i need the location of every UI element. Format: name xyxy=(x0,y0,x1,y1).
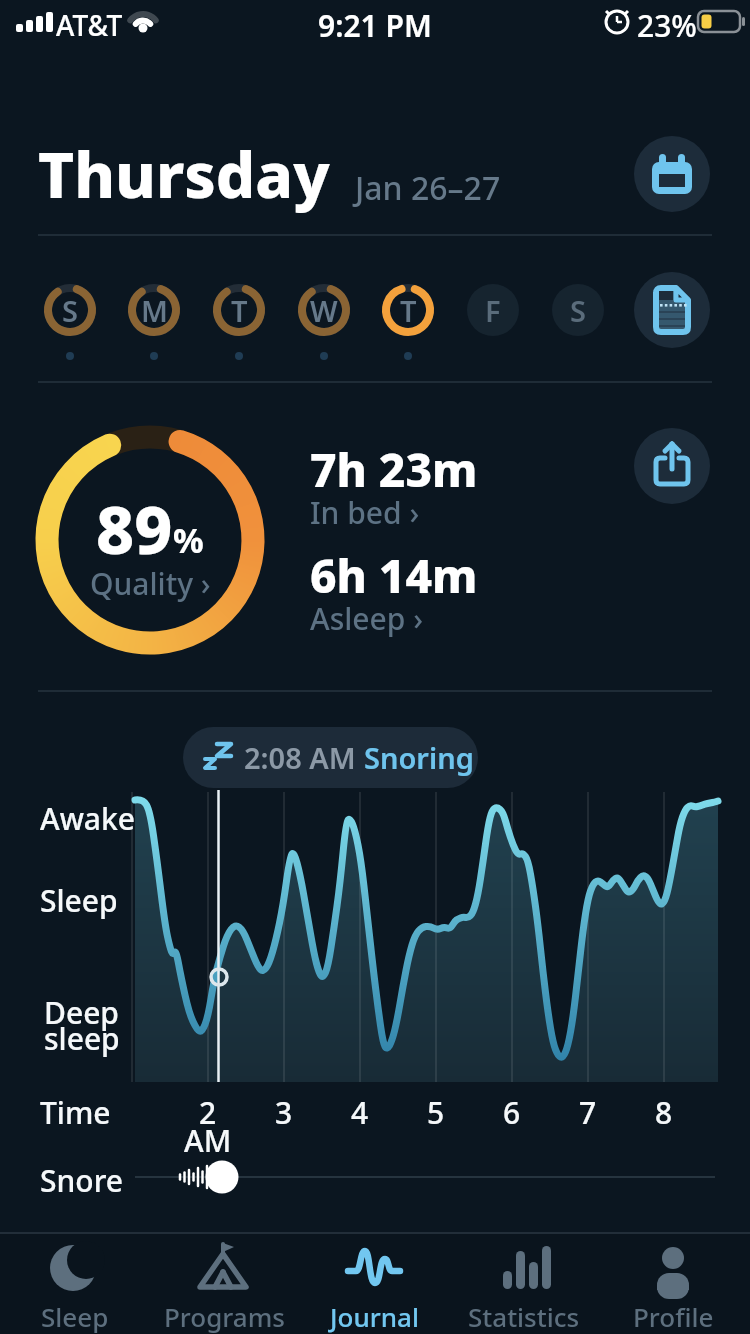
button[interactable]: 2:08 AM xyxy=(183,727,478,788)
staticText: 7 xyxy=(579,1092,597,1133)
button[interactable]: Statistics xyxy=(459,1240,589,1334)
staticText: Deep xyxy=(44,992,119,1033)
button[interactable] xyxy=(634,428,710,504)
staticText: 2 xyxy=(199,1092,217,1133)
button[interactable]: Journal xyxy=(309,1240,439,1334)
staticText: Journal xyxy=(330,1299,419,1334)
button[interactable]: S xyxy=(552,284,604,336)
staticText: Sleep xyxy=(40,880,118,921)
button[interactable]: Profile xyxy=(608,1240,738,1334)
staticText: 5 xyxy=(427,1092,445,1133)
staticText: Snoring xyxy=(364,738,474,777)
staticText: Programs xyxy=(164,1299,285,1334)
staticText: T xyxy=(231,291,248,330)
staticText: 89 xyxy=(96,483,173,573)
button[interactable]: F xyxy=(467,284,519,336)
button[interactable]: T xyxy=(213,284,265,336)
staticText: sleep xyxy=(44,1018,120,1059)
button[interactable]: Sleep xyxy=(10,1240,140,1334)
button[interactable] xyxy=(634,136,710,212)
button[interactable]: Quality › xyxy=(55,563,245,604)
staticText: 6h 14m xyxy=(310,544,478,607)
button[interactable]: Asleep › xyxy=(310,598,423,639)
staticText: 2:08 AM xyxy=(244,738,356,777)
staticText: 6 xyxy=(503,1092,521,1133)
staticText: 8 xyxy=(655,1092,673,1133)
staticText: Sleep xyxy=(41,1299,109,1334)
staticText: % xyxy=(173,517,204,563)
staticText: In bed › xyxy=(310,492,420,533)
staticText: S xyxy=(62,291,78,330)
staticText: W xyxy=(310,291,338,330)
staticText: AT&T xyxy=(56,6,123,44)
staticText: Statistics xyxy=(468,1299,580,1334)
staticText: Asleep › xyxy=(310,598,423,639)
button[interactable] xyxy=(634,272,710,348)
staticText: Time xyxy=(40,1092,111,1133)
staticText: AM xyxy=(184,1120,232,1161)
staticText: Thursday xyxy=(38,132,330,216)
staticText: F xyxy=(485,291,501,330)
staticText: M xyxy=(141,291,168,330)
staticText: 3 xyxy=(275,1092,293,1133)
button[interactable]: M xyxy=(128,284,180,336)
staticText: T xyxy=(400,291,417,330)
button[interactable]: Programs xyxy=(159,1240,289,1334)
button[interactable]: T xyxy=(382,284,434,336)
staticText: Jan 26–27 xyxy=(355,166,501,210)
button[interactable]: In bed › xyxy=(310,492,420,533)
button[interactable]: W xyxy=(298,284,350,336)
staticText: 9:21 PM xyxy=(318,5,432,46)
staticText: Snore xyxy=(40,1160,123,1201)
staticText: 4 xyxy=(351,1092,369,1133)
staticText: 23% xyxy=(637,5,697,46)
staticText: Quality › xyxy=(90,563,211,604)
button[interactable]: S xyxy=(44,284,96,336)
staticText: Awake xyxy=(40,798,136,839)
staticText: Profile xyxy=(633,1299,714,1334)
staticText: S xyxy=(570,291,586,330)
staticText: 7h 23m xyxy=(310,438,478,501)
